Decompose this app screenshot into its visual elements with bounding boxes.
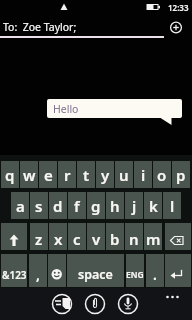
button[interactable]: f [68, 192, 86, 219]
staticText: u [119, 165, 129, 185]
staticText: e [44, 165, 53, 185]
button[interactable] [85, 294, 105, 314]
staticText: p [176, 165, 186, 185]
button[interactable]: d [49, 192, 67, 219]
staticText: k [149, 196, 158, 216]
button[interactable]: b [106, 223, 124, 250]
staticText: l [170, 196, 175, 216]
button[interactable] [165, 20, 187, 36]
button[interactable]: y [96, 161, 114, 188]
staticText: j [132, 196, 137, 216]
staticText: i [141, 165, 146, 185]
staticText: &123 [2, 268, 27, 282]
button[interactable] [118, 294, 138, 314]
staticText: n [129, 229, 139, 249]
button[interactable]: j [125, 192, 143, 219]
button[interactable] [1, 223, 27, 250]
button[interactable] [48, 254, 66, 287]
button[interactable]: u [115, 161, 133, 188]
button[interactable]: v [87, 223, 105, 250]
button[interactable]: ENG [126, 254, 144, 287]
button[interactable]: s [30, 192, 48, 219]
button[interactable]: . [146, 254, 164, 287]
button[interactable]: a [11, 192, 29, 219]
button[interactable]: e [39, 161, 57, 188]
staticText: d [53, 196, 63, 216]
staticText: x [54, 229, 63, 249]
button[interactable] [165, 223, 191, 250]
button[interactable]: o [153, 161, 171, 188]
staticText: g [91, 196, 101, 216]
button[interactable]: g [87, 192, 105, 219]
button[interactable]: k [144, 192, 162, 219]
button[interactable]: i [134, 161, 152, 188]
staticText: space [78, 266, 113, 283]
staticText: f [74, 196, 80, 216]
staticText: r [64, 165, 71, 185]
staticText: , [36, 265, 40, 284]
staticText: y [101, 165, 110, 185]
staticText: c [73, 229, 81, 249]
staticText: m [146, 229, 161, 249]
button[interactable]: w [20, 161, 38, 188]
button[interactable]: space [67, 254, 124, 287]
staticText: 12:33 [168, 2, 189, 13]
button[interactable] [165, 254, 191, 287]
staticText: v [92, 229, 101, 249]
staticText: b [110, 229, 120, 249]
button[interactable]: p [172, 161, 190, 188]
staticText: . [153, 265, 157, 284]
staticText: t [83, 165, 90, 185]
staticText: z [35, 229, 43, 249]
button[interactable] [160, 290, 186, 304]
button[interactable]: l [163, 192, 181, 219]
button[interactable]: Hello [47, 99, 182, 118]
staticText: ENG [126, 269, 144, 281]
button[interactable]: , [29, 254, 47, 287]
button[interactable]: m [144, 223, 162, 250]
button[interactable]: h [106, 192, 124, 219]
button[interactable]: z [30, 223, 48, 250]
button[interactable]: q [1, 161, 19, 188]
button[interactable]: c [68, 223, 86, 250]
button[interactable]: r [58, 161, 76, 188]
staticText: q [5, 165, 15, 185]
staticText: o [157, 165, 167, 185]
staticText: w [23, 165, 36, 185]
staticText: To: Zoe Taylor; [3, 20, 77, 34]
button[interactable]: &123 [1, 254, 27, 287]
staticText: h [110, 196, 120, 216]
button[interactable]: t [77, 161, 95, 188]
staticText: s [35, 196, 43, 216]
button[interactable]: n [125, 223, 143, 250]
button[interactable]: x [49, 223, 67, 250]
staticText: Hello [53, 102, 79, 116]
button[interactable]: To: Zoe Taylor; [3, 20, 77, 34]
staticText: a [16, 196, 25, 216]
button[interactable] [52, 294, 72, 314]
